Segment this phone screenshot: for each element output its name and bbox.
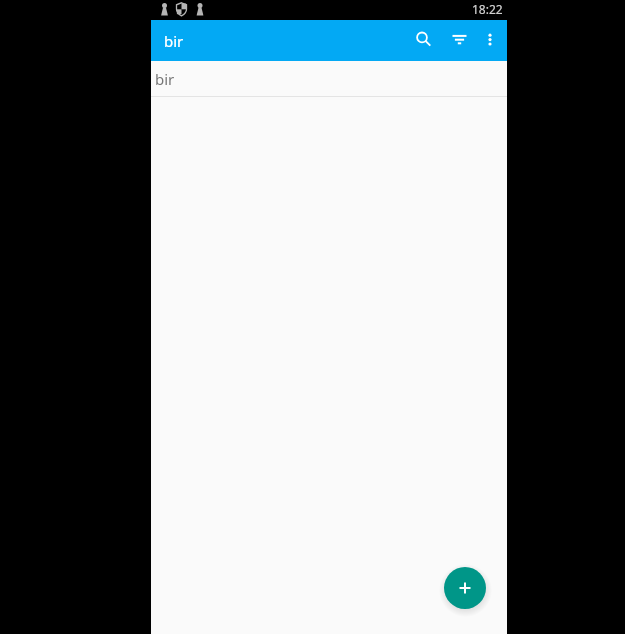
- staticText: 18:22: [472, 1, 503, 17]
- staticText: bir: [155, 69, 175, 89]
- button[interactable]: [444, 567, 486, 609]
- button[interactable]: [478, 20, 507, 61]
- button[interactable]: [441, 20, 478, 61]
- staticText: bir: [164, 31, 184, 51]
- button[interactable]: [404, 20, 440, 61]
- button[interactable]: bir: [151, 61, 507, 97]
